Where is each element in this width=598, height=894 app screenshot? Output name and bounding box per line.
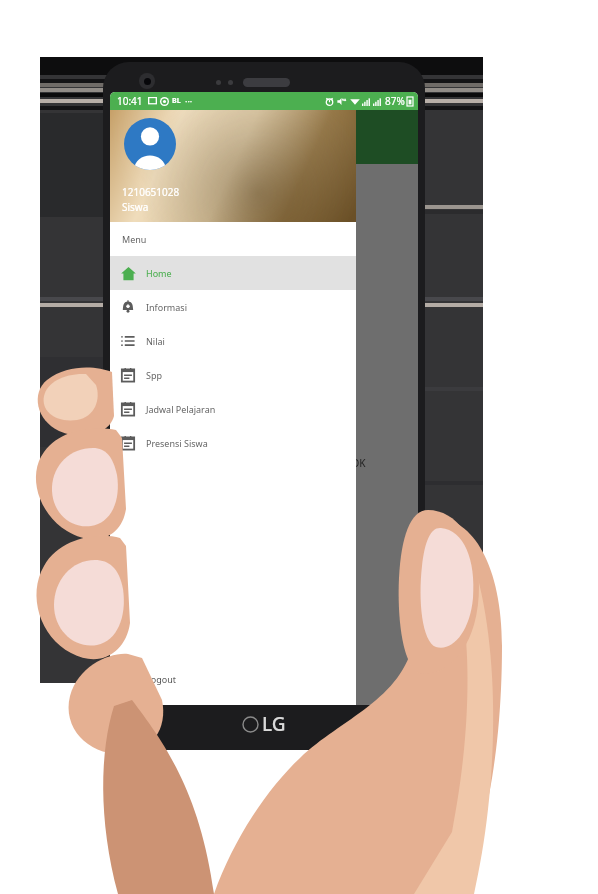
staticText: Menu [122,233,147,245]
staticText: Presensi Siswa [146,437,208,449]
staticText: Spp [146,369,163,381]
button[interactable]: Jadwal Pelajaran [110,392,356,426]
button[interactable]: Home [110,256,356,290]
staticText: ··· [185,95,193,107]
staticText: 10:41 [117,94,143,108]
button[interactable]: Presensi Siswa [110,426,356,460]
staticText: SMK NEGERI 1 DEPOK [262,456,366,470]
staticText: BL [172,96,181,106]
staticText: Siswa [122,200,149,214]
staticText: 1210651028 [122,185,180,199]
staticText: 87% [385,94,405,108]
staticText: Logout [146,673,176,685]
staticText: Informasi [146,301,187,313]
button[interactable]: Informasi [110,290,356,324]
staticText: Home [146,267,172,279]
staticText: Nilai [146,335,165,347]
staticText: LG [262,711,286,737]
button[interactable]: Profile photo [124,118,176,170]
button[interactable]: Logout [110,660,356,698]
button[interactable]: Spp [110,358,356,392]
staticText: Jadwal Pelajaran [146,403,216,415]
button[interactable]: Nilai [110,324,356,358]
